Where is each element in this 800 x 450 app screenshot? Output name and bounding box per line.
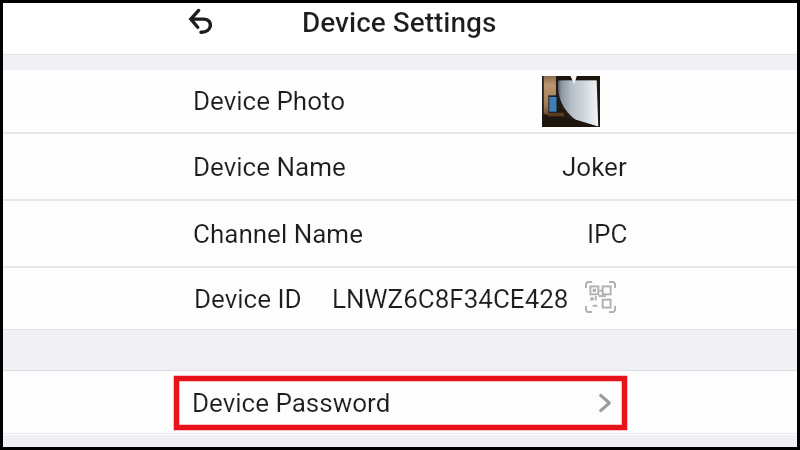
button[interactable]: Device Name — [3, 134, 797, 199]
button[interactable]: Device ID — [3, 268, 797, 329]
staticText: Device Name — [193, 152, 346, 182]
staticText: Device Photo — [193, 86, 346, 116]
staticText: IPC — [587, 219, 628, 249]
button[interactable]: Device Photo — [3, 70, 797, 132]
staticText: Joker — [562, 152, 627, 182]
button[interactable]: Scan QR code — [583, 280, 617, 314]
staticText: Channel Name — [193, 219, 363, 249]
staticText: LNWZ6C8F34CE428 — [332, 284, 569, 314]
button[interactable]: Device Password — [174, 376, 627, 430]
button[interactable]: Back — [174, 0, 226, 43]
button[interactable]: Channel Name — [3, 201, 797, 266]
staticText: Device Settings — [302, 6, 497, 39]
staticText: Device Password — [192, 388, 391, 418]
staticText: Device ID — [194, 284, 302, 314]
